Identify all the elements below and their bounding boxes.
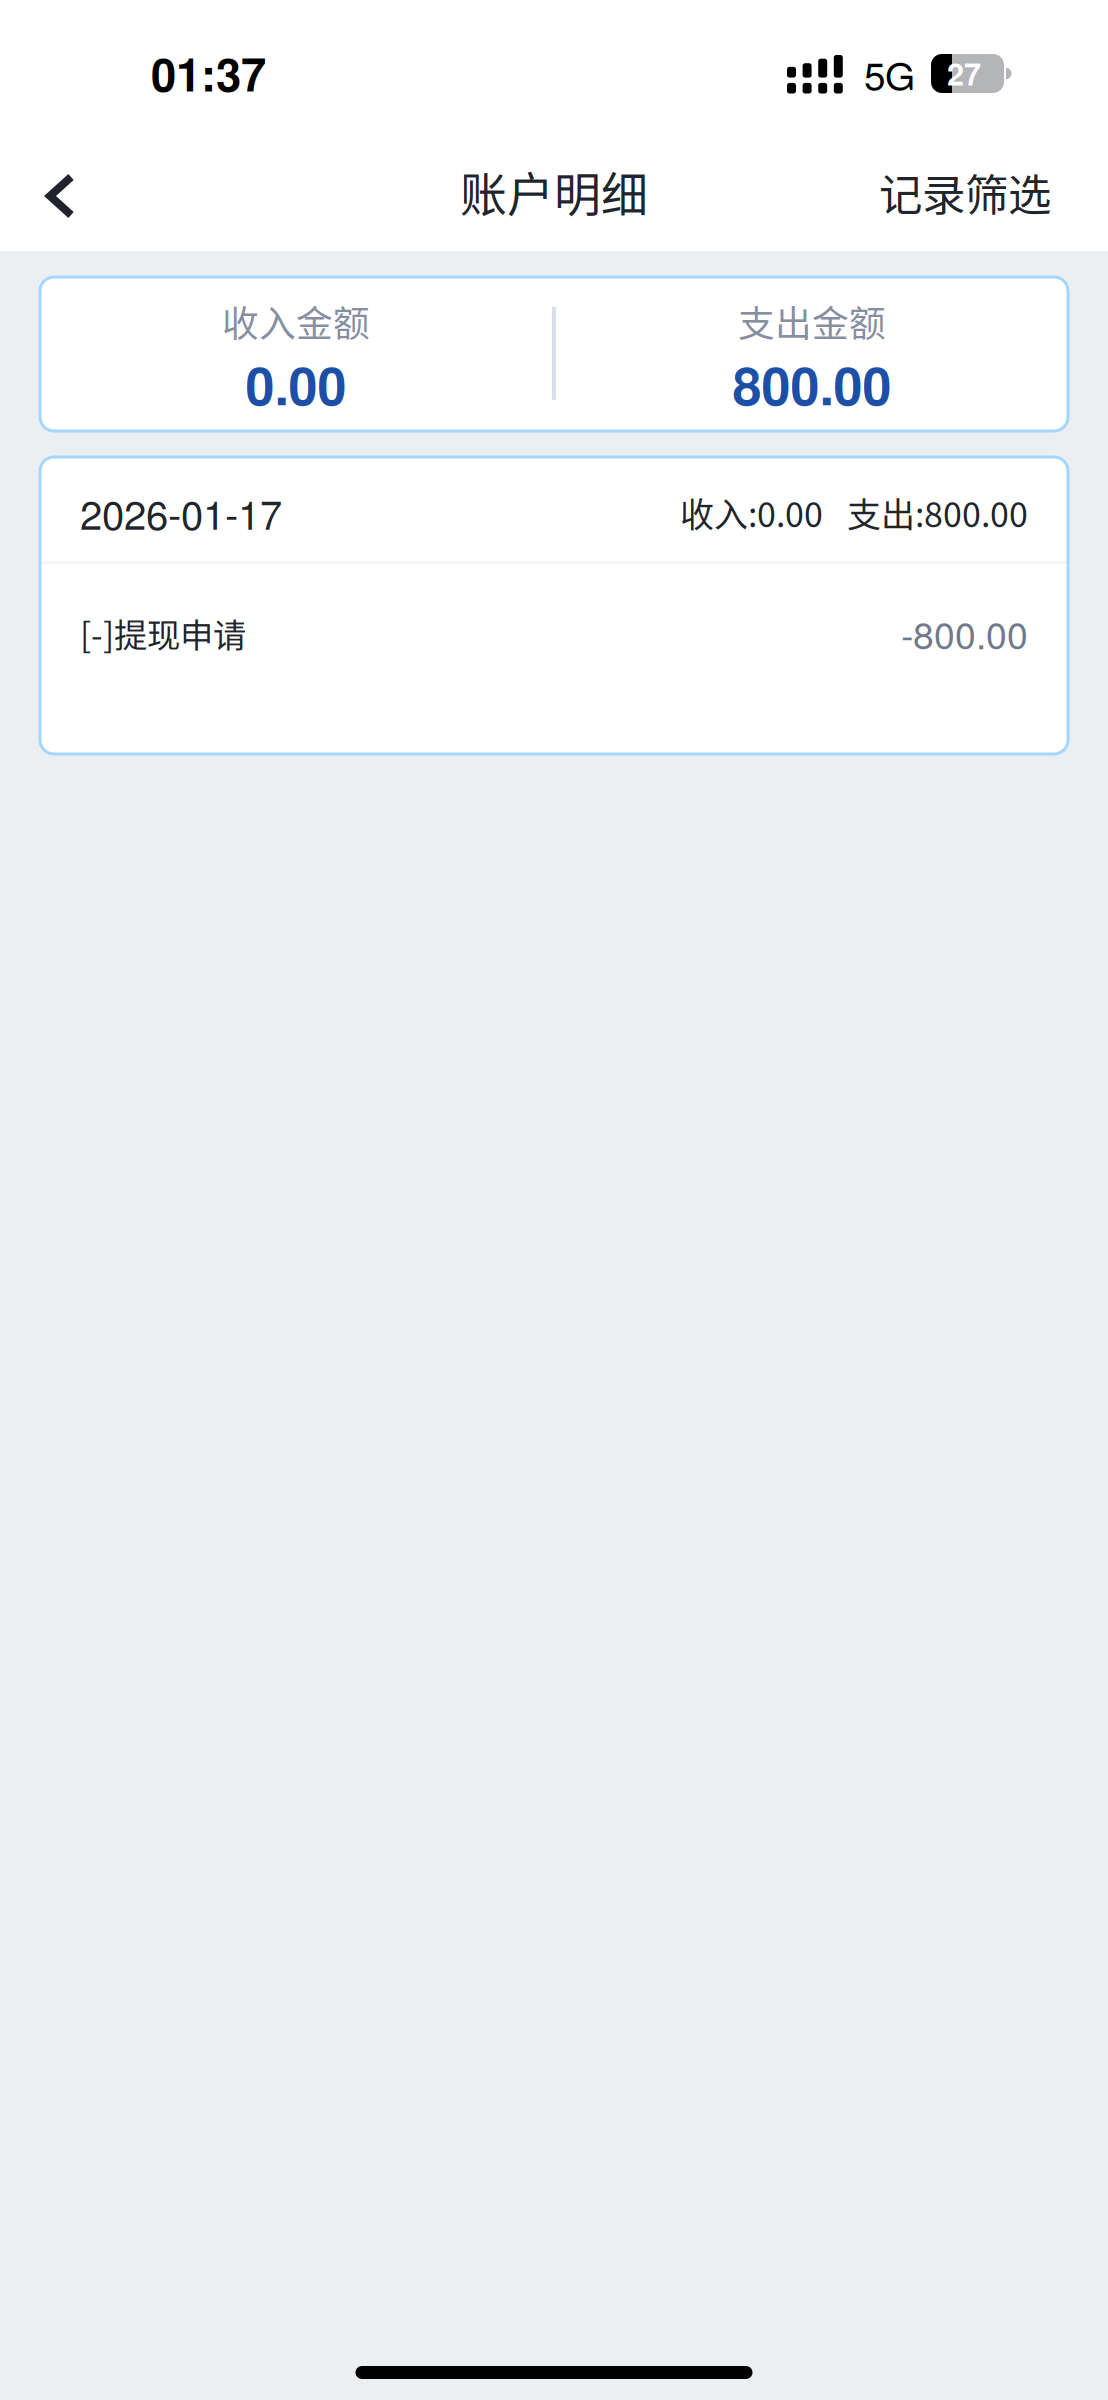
staticText: 记录筛选 <box>879 160 1051 223</box>
staticText: 收入金额 <box>222 294 370 348</box>
button[interactable]: [-]提现申请 <box>40 564 1068 685</box>
button[interactable]: 记录筛选 <box>839 142 1108 251</box>
staticText: 0.00 <box>245 347 346 421</box>
staticText: 支出金额 <box>738 294 886 348</box>
staticText: 01:37 <box>151 40 266 105</box>
staticText: 800.00 <box>732 347 891 421</box>
staticText: 27 <box>947 51 981 95</box>
button[interactable]: Back <box>0 151 117 243</box>
staticText: 收入:0.00 支出:800.00 <box>680 488 1028 537</box>
staticText: 5G <box>864 46 915 102</box>
staticText: -800.00 <box>901 606 1028 660</box>
staticText: [-]提现申请 <box>80 609 246 657</box>
staticText: 2026-01-17 <box>80 484 282 541</box>
staticText: 账户明细 <box>460 157 648 225</box>
